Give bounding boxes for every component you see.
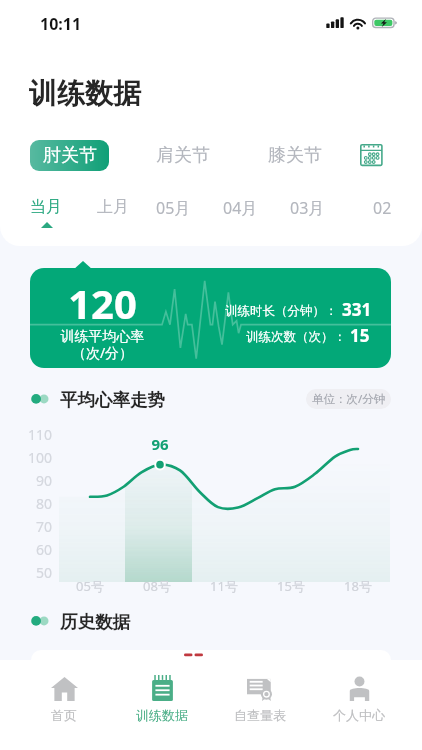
staticText: 05月 [156, 197, 191, 219]
staticText: 上月 [97, 197, 129, 217]
staticText: 10:11 [40, 13, 82, 35]
staticText: （次/分） [30, 343, 175, 362]
staticText: 膝关节 [268, 144, 322, 167]
button[interactable]: 05月 [156, 197, 191, 219]
staticText: 平均心率走势 [60, 389, 165, 411]
staticText: 08号 [136, 577, 178, 595]
staticText: 训练平均心率 [30, 328, 175, 346]
button[interactable]: 训练数据 [113, 660, 211, 750]
staticText: 18号 [337, 577, 379, 595]
staticText: 个人中心 [333, 707, 385, 723]
staticText: 50 [18, 563, 52, 582]
staticText: 70 [18, 517, 52, 536]
staticText: 首页 [51, 707, 77, 723]
staticText: 02 [373, 197, 392, 219]
staticText: 05号 [69, 577, 111, 595]
staticText: 100 [18, 448, 52, 467]
staticText: 15 [350, 324, 370, 347]
staticText: 90 [18, 471, 52, 490]
staticText: 肘关节 [43, 144, 97, 167]
staticText: 肩关节 [156, 144, 210, 167]
button[interactable]: 当月 [30, 197, 62, 217]
button[interactable]: 个人中心 [310, 660, 408, 750]
button[interactable]: 自查量表 [211, 660, 309, 750]
staticText: 训练数据 [29, 76, 141, 111]
staticText: 单位：次/分钟 [312, 391, 386, 407]
staticText: 11号 [203, 577, 245, 595]
staticText: 60 [18, 540, 52, 559]
staticText: 03月 [290, 197, 325, 219]
button[interactable]: 首页 [15, 660, 113, 750]
button[interactable]: 肩关节 [147, 140, 219, 171]
staticText: 110 [18, 425, 52, 444]
staticText: 历史数据 [60, 611, 130, 633]
staticText: 96 [145, 434, 175, 454]
staticText: 训练数据 [136, 707, 188, 723]
button[interactable]: 上月 [97, 197, 129, 217]
staticText: 120 [30, 276, 175, 330]
staticText: 当月 [30, 197, 62, 217]
staticText: 80 [18, 494, 52, 513]
button[interactable]: 03月 [290, 197, 325, 219]
button[interactable]: 04月 [223, 197, 258, 219]
button[interactable]: 膝关节 [259, 140, 331, 171]
button[interactable]: Calendar [360, 144, 383, 167]
staticText: 自查量表 [234, 707, 286, 723]
staticText: 训练次数（次）： [246, 329, 346, 345]
staticText: 训练时长（分钟）： [225, 303, 338, 319]
staticText: 331 [342, 298, 372, 321]
staticText: 15号 [270, 577, 312, 595]
button[interactable]: 肘关节 [30, 140, 109, 171]
staticText: 04月 [223, 197, 258, 219]
button[interactable]: 02 [373, 197, 392, 219]
